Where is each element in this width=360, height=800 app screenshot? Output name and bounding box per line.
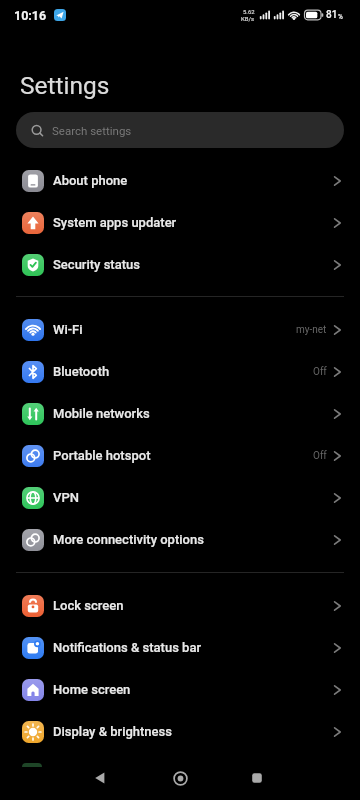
staticText: Wi-Fi — [53, 322, 83, 337]
button[interactable]: Home screen — [0, 669, 360, 711]
button[interactable]: More connectivity options — [0, 519, 360, 561]
staticText: About phone — [53, 173, 128, 188]
staticText: KB/s — [241, 15, 255, 22]
button[interactable]: Mobile networks — [0, 393, 360, 435]
staticText: Lock screen — [53, 598, 124, 613]
staticText: 81 — [326, 9, 338, 21]
staticText: More connectivity options — [53, 532, 204, 547]
button[interactable]: Search settings — [16, 112, 344, 148]
staticText: % — [338, 13, 343, 21]
button[interactable]: Notifications & status bar — [0, 627, 360, 669]
staticText: Security status — [53, 257, 141, 272]
button[interactable]: System apps updater — [0, 202, 360, 244]
staticText: VPN — [53, 490, 79, 505]
button[interactable]: Lock screen — [0, 585, 360, 627]
staticText: Bluetooth — [53, 364, 110, 379]
button[interactable]: VPN — [0, 477, 360, 519]
staticText: Portable hotspot — [53, 448, 151, 463]
staticText: Settings — [20, 71, 110, 100]
button[interactable]: About phone — [0, 160, 360, 202]
button[interactable]: Security status — [0, 244, 360, 286]
button[interactable] — [78, 756, 122, 800]
staticText: Notifications & status bar — [53, 640, 202, 655]
button[interactable] — [158, 756, 202, 800]
staticText: 5.62 — [243, 8, 255, 15]
staticText: Mobile networks — [53, 406, 150, 421]
staticText: Search settings — [52, 124, 132, 137]
staticText: Home screen — [53, 682, 131, 697]
staticText: my-net — [296, 324, 327, 336]
staticText: 10:16 — [14, 8, 47, 23]
button[interactable]: Display & brightness — [0, 711, 360, 753]
staticText: Off — [313, 366, 327, 378]
staticText: Display & brightness — [53, 724, 173, 739]
button[interactable]: Portable hotspot — [0, 435, 360, 477]
button[interactable] — [235, 756, 279, 800]
staticText: Off — [313, 450, 327, 462]
staticText: System apps updater — [53, 215, 177, 230]
button[interactable]: Bluetooth — [0, 351, 360, 393]
button[interactable]: Wi-Fi — [0, 309, 360, 351]
